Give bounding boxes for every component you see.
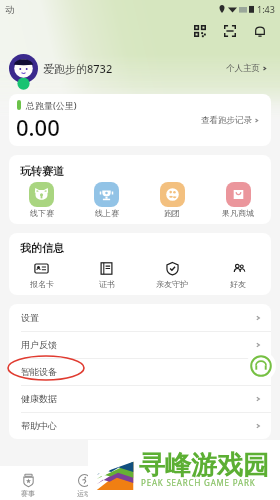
button[interactable]: 健康数据 <box>9 385 271 412</box>
staticText: 帮助中心 <box>21 420 57 431</box>
button[interactable]: 我的 <box>224 469 280 498</box>
staticText: 证书 <box>99 279 115 289</box>
button[interactable]: 亲友守护 <box>139 261 205 289</box>
button[interactable]: 个人主页 <box>223 60 270 77</box>
button[interactable]: 果凡商城 <box>205 182 271 218</box>
button[interactable]: 线下赛 <box>9 182 74 218</box>
staticText: 个人主页 <box>226 63 260 74</box>
staticText: 果凡商城 <box>222 208 254 218</box>
button[interactable]: 证书 <box>74 261 139 289</box>
staticText: 用户反馈 <box>21 339 57 350</box>
button[interactable]: 二维码 <box>189 20 211 42</box>
staticText: 跑团 <box>164 208 180 218</box>
staticText: 亲友守护 <box>156 279 188 289</box>
button[interactable]: 好友 <box>205 261 271 289</box>
staticText: 线上赛 <box>95 208 119 218</box>
staticText: 设置 <box>21 312 39 323</box>
staticText: 发现 <box>133 489 147 498</box>
staticText: 1:43 <box>257 3 275 15</box>
button[interactable]: 通知 <box>249 20 271 42</box>
staticText: 好友 <box>230 279 246 289</box>
staticText: 智能设备 <box>21 366 57 377</box>
staticText: 0.00 <box>16 112 60 142</box>
button[interactable]: 赛事 <box>0 469 56 498</box>
button[interactable]: 线上赛 <box>74 182 139 218</box>
button[interactable]: 客服 <box>246 351 276 381</box>
staticText: PEAK SEARCH GAME PARK <box>141 477 256 488</box>
staticText: 健康数据 <box>21 393 57 404</box>
button[interactable]: 设置 <box>9 304 271 331</box>
staticText: 寻峰游戏园 <box>139 449 269 482</box>
button[interactable]: 商城 <box>168 469 224 498</box>
button[interactable]: 发现 <box>112 469 168 498</box>
button[interactable]: 扫一扫 <box>219 20 241 42</box>
button[interactable]: 运动 <box>56 469 112 498</box>
button[interactable]: 用户反馈 <box>9 331 271 358</box>
button[interactable]: 报名卡 <box>9 261 74 289</box>
button[interactable]: 智能设备 <box>9 358 271 385</box>
staticText: 动 <box>5 4 14 15</box>
button[interactable]: 帮助中心 <box>9 412 271 439</box>
staticText: 我的信息 <box>20 241 64 255</box>
staticText: 玩转赛道 <box>20 164 64 178</box>
staticText: 总跑量(公里) <box>26 99 77 111</box>
staticText: 查看跑步记录 <box>201 115 252 126</box>
button[interactable]: 跑团 <box>139 182 205 218</box>
staticText: 赛事 <box>21 489 35 498</box>
staticText: 报名卡 <box>30 279 54 289</box>
staticText: 运动 <box>77 489 91 498</box>
staticText: 线下赛 <box>30 208 54 218</box>
button[interactable]: 查看跑步记录 <box>198 112 262 129</box>
staticText: 爱跑步的8732 <box>43 61 113 76</box>
